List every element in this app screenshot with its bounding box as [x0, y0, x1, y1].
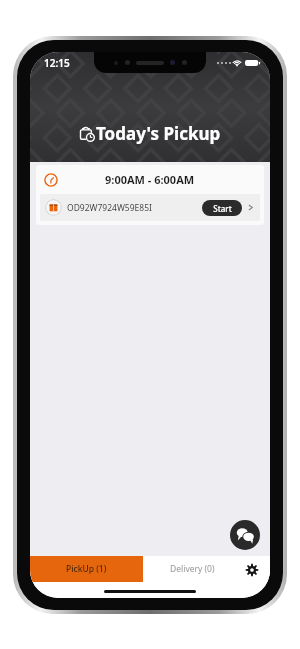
- button[interactable]: Chat: [230, 520, 260, 550]
- other: Open order details: [246, 203, 255, 212]
- button[interactable]: PickUp (1): [30, 556, 143, 582]
- button[interactable]: OD92W7924W59E85I: [40, 194, 260, 221]
- button[interactable]: Delivery (0): [143, 556, 270, 582]
- button[interactable]: 9:00AM - 6:00AM: [36, 165, 264, 194]
- staticText: OD92W7924W59E85I: [67, 202, 202, 214]
- staticText: Start: [213, 203, 232, 214]
- staticText: 12:15: [44, 56, 70, 70]
- staticText: Today's Pickup: [96, 122, 221, 145]
- button[interactable]: Settings: [242, 560, 262, 580]
- staticText: 9:00AM - 6:00AM: [105, 172, 195, 187]
- staticText: Delivery (0): [170, 563, 215, 575]
- button[interactable]: Start: [202, 200, 242, 216]
- staticText: PickUp (1): [66, 563, 107, 575]
